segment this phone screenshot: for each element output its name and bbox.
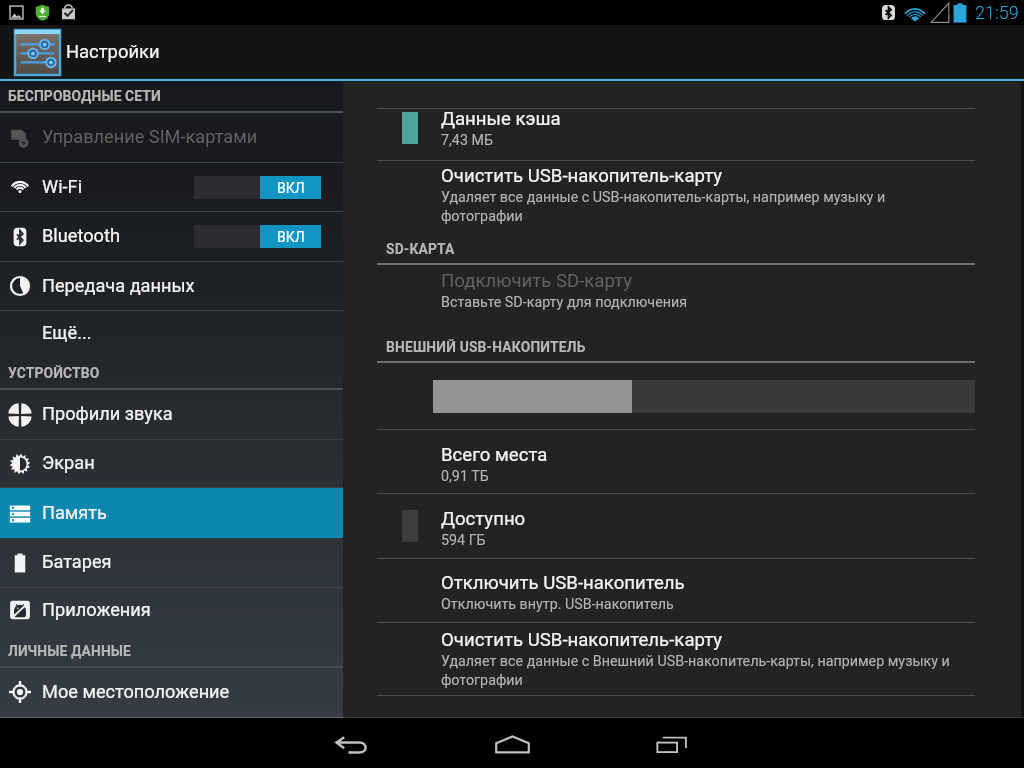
button[interactable]: Данные кэша (441, 108, 959, 149)
staticText: Всего места (441, 444, 548, 466)
staticText: SD-КАРТА (386, 241, 455, 257)
staticText: Приложения (42, 599, 151, 620)
staticText: Bluetooth (42, 225, 120, 246)
button[interactable]: Recent apps (637, 719, 709, 768)
button[interactable]: Управление SIM-картами (0, 113, 343, 162)
staticText: БЕСПРОВОДНЫЕ СЕТИ (8, 88, 161, 104)
staticText: Wi-Fi (42, 176, 83, 197)
button[interactable]: Доступно (441, 508, 959, 549)
button[interactable]: Профили звука (0, 390, 343, 439)
staticText: ЛИЧНЫЕ ДАННЫЕ (8, 643, 131, 659)
button[interactable]: ВКЛ (194, 176, 321, 199)
button[interactable]: Отключить USB-накопитель (441, 572, 959, 613)
button[interactable]: Мое местоположение (0, 668, 343, 716)
staticText: Передача данных (42, 275, 195, 296)
button[interactable]: Всего места (441, 444, 959, 485)
staticText: Профили звука (42, 403, 173, 424)
staticText: Подключить SD-карту (441, 270, 633, 292)
staticText: 0,91 ТБ (441, 468, 489, 485)
button[interactable]: Память (0, 488, 343, 538)
staticText: Память (42, 502, 107, 523)
button[interactable]: Bluetooth (0, 212, 343, 261)
staticText: Мое местоположение (42, 681, 230, 702)
staticText: Очистить USB-накопитель-карту (441, 629, 723, 651)
button[interactable]: Wi-Fi (0, 163, 343, 211)
staticText: 21:59 (975, 2, 1019, 23)
button[interactable]: Передача данных (0, 262, 343, 310)
staticText: Вставьте SD-карту для подключения (441, 294, 688, 311)
staticText: 594 ГБ (441, 532, 486, 549)
staticText: Экран (42, 452, 95, 473)
staticText: Удаляет все данные с USB-накопитель-карт… (441, 189, 959, 225)
button[interactable]: Home (476, 719, 548, 768)
button[interactable]: Ещё... (0, 311, 343, 356)
staticText: Отключить USB-накопитель (441, 572, 685, 594)
staticText: ВНЕШНИЙ USB-НАКОПИТЕЛЬ (386, 339, 586, 355)
button[interactable]: Очистить USB-накопитель-карту (441, 629, 959, 689)
button[interactable]: Подключить SD-карту (441, 270, 959, 311)
button[interactable]: Back (314, 719, 386, 768)
button[interactable]: Экран (0, 440, 343, 487)
staticText: 7,43 МБ (441, 132, 493, 149)
staticText: Удаляет все данные с Внешний USB-накопит… (441, 653, 959, 689)
staticText: Отключить внутр. USB-накопитель (441, 596, 674, 613)
staticText: Доступно (441, 508, 526, 530)
button[interactable]: Батарея (0, 538, 343, 587)
staticText: Настройки (66, 41, 160, 63)
staticText: Очистить USB-накопитель-карту (441, 165, 723, 187)
staticText: ВКЛ (277, 229, 305, 245)
button[interactable]: ВКЛ (194, 225, 321, 248)
staticText: Управление SIM-картами (42, 126, 258, 147)
staticText: УСТРОЙСТВО (8, 365, 100, 381)
staticText: ВКЛ (277, 180, 305, 196)
staticText: Батарея (42, 551, 112, 572)
button[interactable]: Настройки (0, 25, 184, 79)
button[interactable]: Приложения (0, 588, 343, 632)
staticText: Ещё... (42, 322, 92, 343)
button[interactable]: Очистить USB-накопитель-карту (441, 165, 959, 225)
staticText: Данные кэша (441, 108, 561, 130)
